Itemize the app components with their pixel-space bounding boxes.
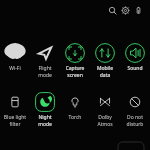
staticText: Mobile data: [90, 65, 120, 78]
staticText: Dolby Atmos: [90, 114, 120, 127]
button[interactable]: Wi-Fi: [0, 43, 30, 72]
button[interactable]: Sound: [120, 43, 150, 72]
staticText: Blue light filter: [0, 114, 30, 127]
button[interactable]: Night mode: [30, 92, 60, 127]
button[interactable]: Blue light filter: [0, 92, 30, 127]
staticText: Sound: [120, 65, 150, 72]
staticText: Wi-Fi: [0, 65, 30, 72]
button[interactable]: Do not disturb: [120, 92, 150, 127]
button[interactable]: More: [118, 142, 144, 150]
staticText: Torch: [60, 114, 90, 121]
button[interactable]: Mobile data: [90, 43, 120, 78]
button[interactable]: Battery: [133, 5, 144, 16]
staticText: Capture screen: [60, 65, 90, 78]
button[interactable]: Capture screen: [60, 43, 90, 78]
staticText: Do not disturb: [120, 114, 150, 127]
staticText: Flight mode: [30, 65, 60, 78]
button[interactable]: Torch: [60, 92, 90, 121]
staticText: Night mode: [30, 114, 60, 127]
button[interactable]: Flight mode: [30, 43, 60, 78]
button[interactable]: Settings: [120, 5, 131, 16]
button[interactable]: Dolby Atmos: [90, 92, 120, 127]
button[interactable]: Search: [107, 5, 118, 16]
